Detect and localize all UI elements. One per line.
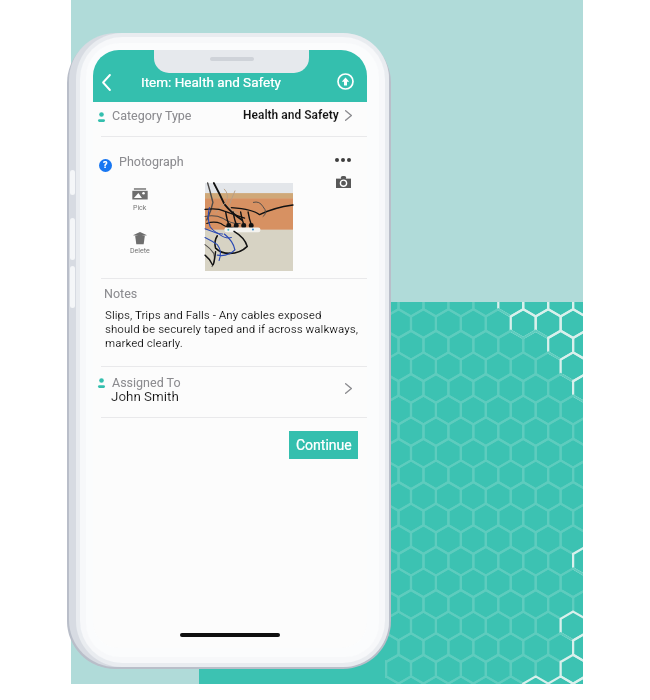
staticText: Photograph [119,154,184,169]
staticText: Notes [104,286,138,301]
button[interactable]: Assigned To [93,367,367,417]
staticText: Category Type [112,108,192,123]
staticText: Slips, Trips and Falls - Any cables expo… [105,308,358,350]
staticText: Assigned To [112,375,181,390]
staticText: ? [103,160,108,171]
staticText: Delete [130,247,150,255]
button[interactable]: Take photo [328,171,358,193]
button[interactable]: Category Type [93,102,367,136]
staticText: John Smith [111,389,179,405]
staticText: Continue [296,437,352,453]
button[interactable]: Back [93,69,119,95]
button[interactable]: Upload [332,68,358,94]
staticText: Item: Health and Safety [141,74,281,90]
button[interactable]: Pick [125,188,155,212]
button[interactable]: Continue [289,431,358,459]
button[interactable]: Help [99,159,112,172]
staticText: Pick [133,204,147,212]
staticText: Health and Safety [243,108,339,122]
button[interactable]: Delete [125,231,155,255]
button[interactable]: More options [328,149,358,171]
